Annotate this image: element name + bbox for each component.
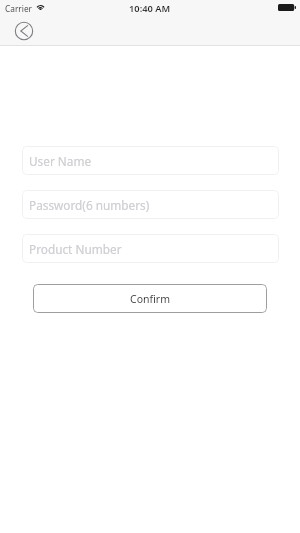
button[interactable]: Product Number xyxy=(22,234,279,263)
staticText: Password(6 numbers) xyxy=(29,197,150,213)
staticText: User Name xyxy=(29,153,92,169)
button[interactable]: Back xyxy=(9,16,39,46)
button[interactable]: User Name xyxy=(22,146,279,175)
staticText: 10:40 AM xyxy=(129,2,171,15)
button[interactable]: Confirm xyxy=(33,284,267,313)
staticText: Product Number xyxy=(29,241,122,257)
button[interactable]: Password(6 numbers) xyxy=(22,190,279,219)
staticText: Confirm xyxy=(130,292,170,306)
staticText: Carrier xyxy=(5,3,32,14)
